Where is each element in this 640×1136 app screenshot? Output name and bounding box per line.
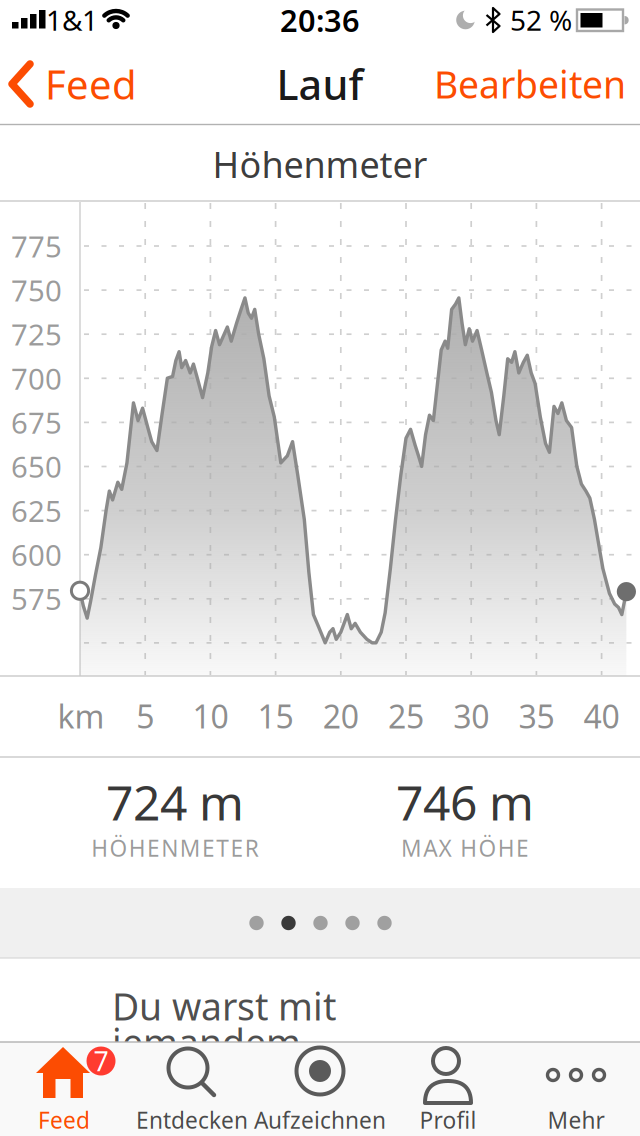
staticText: 20 [323, 695, 359, 737]
button[interactable]: Profil [384, 1042, 512, 1136]
staticText: 1&1 [46, 1, 98, 39]
staticText: Aufzeichnen [254, 1105, 386, 1135]
staticText: MAX HÖHE [401, 833, 529, 863]
button[interactable]: Entdecken [128, 1042, 256, 1136]
staticText: 7 [93, 1043, 108, 1079]
staticText: Feed [45, 57, 137, 110]
staticText: Profil [419, 1105, 476, 1135]
staticText: 724 m [106, 770, 244, 834]
staticText: Mehr [547, 1105, 604, 1135]
staticText: Bearbeiten [434, 59, 626, 109]
staticText: 675 [11, 403, 62, 442]
button[interactable]: Mehr [512, 1042, 640, 1136]
staticText: 746 m [396, 770, 534, 834]
staticText: km [57, 695, 104, 737]
button[interactable]: 7 [0, 1042, 128, 1136]
staticText: 10 [192, 695, 228, 737]
staticText: 20:36 [280, 0, 360, 40]
staticText: Entdecken [136, 1105, 248, 1135]
staticText: jemandem [112, 1017, 301, 1067]
staticText: 600 [11, 535, 62, 574]
staticText: 52 % [510, 1, 572, 39]
staticText: 35 [518, 695, 554, 737]
staticText: HÖHENMETER [91, 833, 259, 863]
staticText: 5 [136, 695, 154, 737]
staticText: 750 [11, 271, 62, 310]
staticText: 725 [11, 315, 62, 354]
staticText: 40 [584, 695, 620, 737]
staticText: 575 [11, 579, 62, 618]
button[interactable]: Feed [9, 57, 137, 110]
button[interactable]: Bearbeiten [434, 59, 626, 109]
staticText: Höhenmeter [212, 140, 427, 188]
staticText: Du warst mit [112, 981, 336, 1031]
staticText: 775 [11, 226, 62, 265]
staticText: Lauf [276, 57, 363, 111]
button[interactable]: Aufzeichnen [256, 1042, 384, 1136]
staticText: 650 [11, 447, 62, 486]
staticText: 700 [11, 359, 62, 398]
staticText: 30 [453, 695, 489, 737]
staticText: 625 [11, 491, 62, 530]
staticText: 15 [258, 695, 294, 737]
staticText: 25 [388, 695, 424, 737]
staticText: Feed [38, 1105, 90, 1135]
